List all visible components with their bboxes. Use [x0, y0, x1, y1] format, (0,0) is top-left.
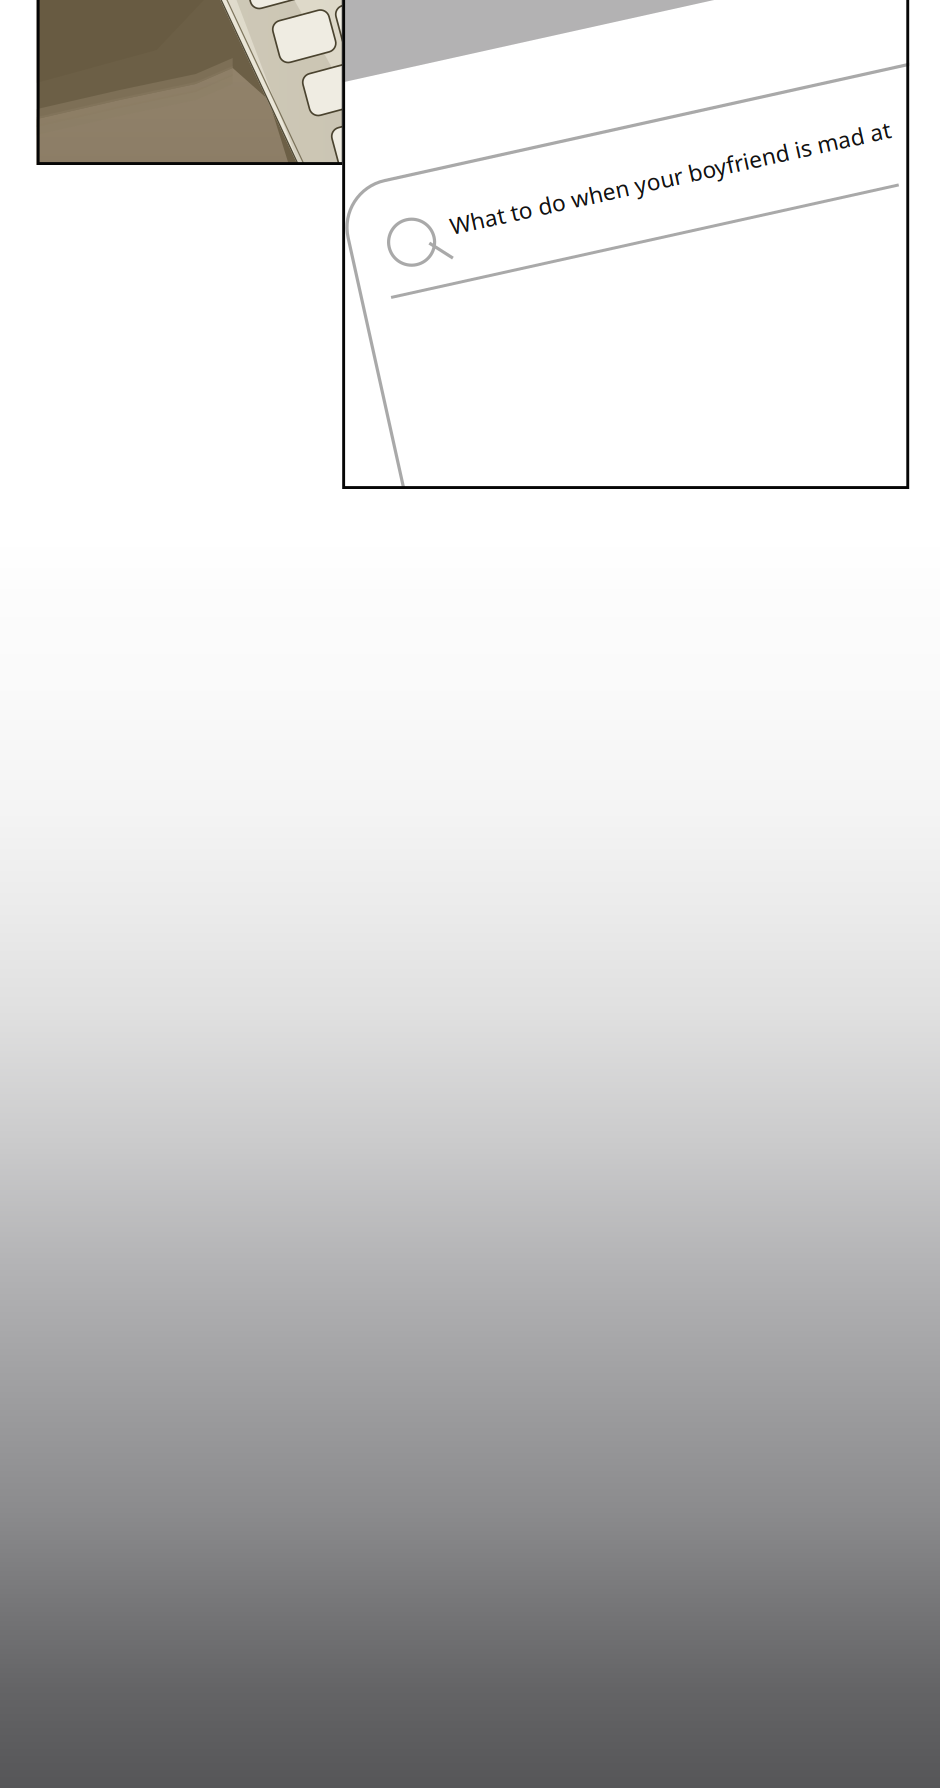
staticText: What to do when your boyfriend is mad at	[394, 229, 845, 259]
